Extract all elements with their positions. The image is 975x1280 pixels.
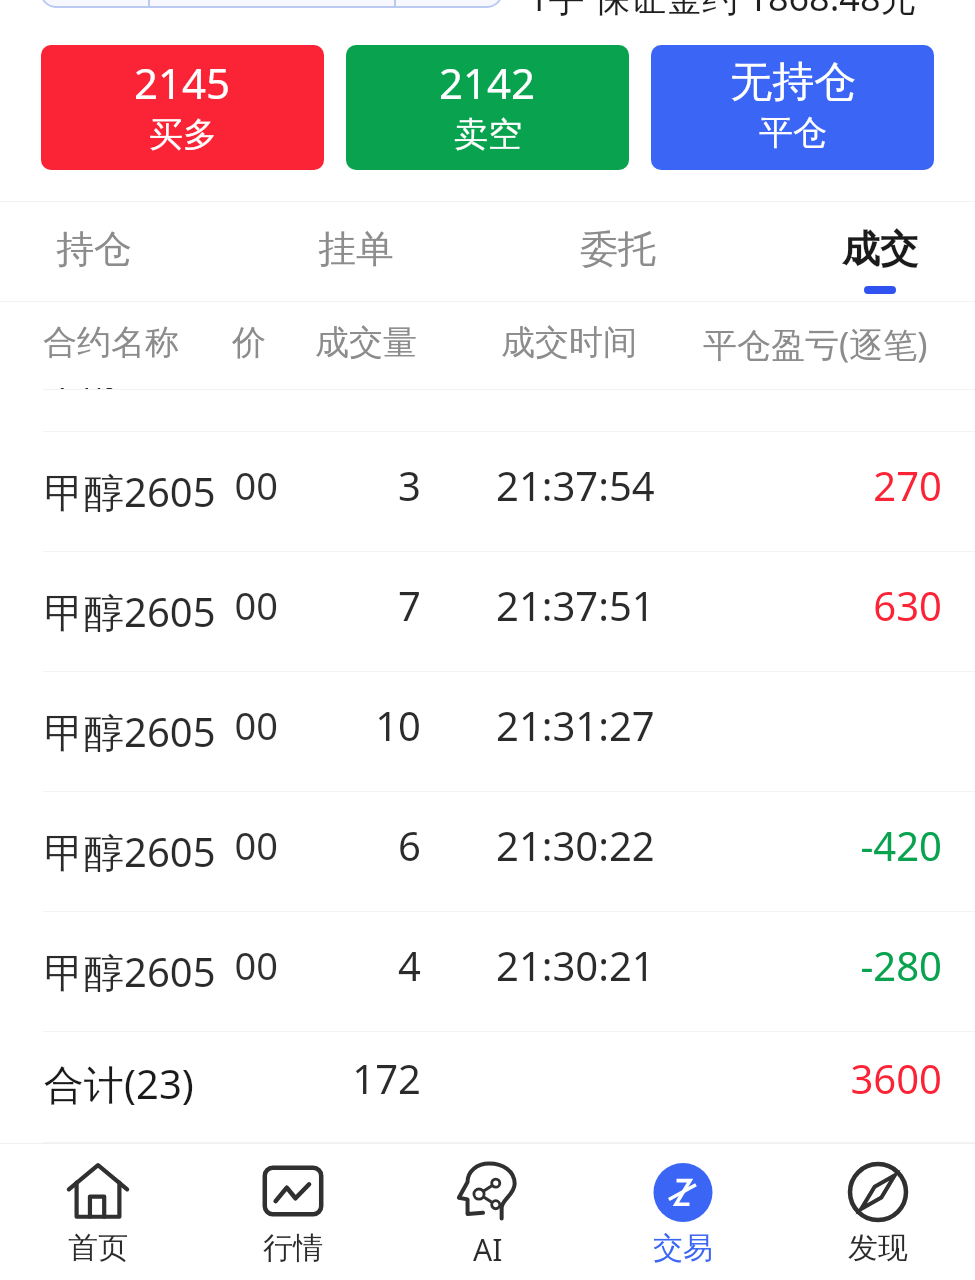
staticText: 行情 — [263, 1229, 323, 1267]
staticText: 00 — [188, 939, 278, 991]
staticText: 成交量 — [315, 321, 417, 364]
button[interactable]: 行情 — [195, 1144, 390, 1280]
staticText: 均价 — [232, 321, 278, 364]
button[interactable]: 00 — [0, 432, 975, 551]
staticText: 甲醇2605 — [44, 704, 216, 759]
staticText: 无持仓 — [730, 56, 856, 109]
staticText: 3 — [321, 458, 421, 512]
staticText: 首页 — [68, 1229, 128, 1267]
staticText: 21:30:21 — [496, 938, 655, 992]
staticText: 买多 — [149, 113, 217, 156]
button[interactable]: 00 — [0, 672, 975, 791]
staticText: 270 — [742, 458, 942, 512]
staticText: 甲醇2605 — [44, 584, 216, 639]
staticText: 172 — [321, 1051, 421, 1105]
button[interactable]: 00 — [0, 552, 975, 671]
button[interactable]: 2145 — [41, 45, 324, 170]
staticText: 21:37:54 — [496, 458, 655, 512]
staticText: 甲醇2605 — [44, 824, 216, 879]
staticText: 3600 — [742, 1051, 942, 1105]
staticText: 委托 — [580, 225, 656, 273]
button[interactable]: 持仓 — [19, 202, 169, 301]
staticText: 交易 — [653, 1229, 713, 1267]
staticText: 21:37:51 — [496, 578, 655, 632]
staticText: 6 — [321, 818, 421, 872]
staticText: 甲醇2605 — [44, 944, 216, 999]
staticText: 21:30:22 — [496, 818, 655, 872]
staticText: 10 — [321, 698, 421, 752]
staticText: 平仓 — [759, 111, 827, 154]
button[interactable]: 00 — [0, 912, 975, 1031]
button[interactable]: 00 — [0, 792, 975, 911]
staticText: 甲醇2605 — [44, 464, 216, 519]
staticText: 甲醇2605 — [44, 342, 216, 397]
staticText: -280 — [742, 938, 942, 992]
staticText: 发现 — [848, 1229, 908, 1267]
staticText: 卖空 — [454, 113, 522, 156]
staticText: 630 — [742, 578, 942, 632]
staticText: 00 — [188, 819, 278, 871]
button[interactable]: 成交 — [805, 202, 955, 301]
button[interactable]: 2142 — [346, 45, 629, 170]
button[interactable]: 委托 — [543, 202, 693, 301]
staticText: 4 — [321, 938, 421, 992]
staticText: 00 — [188, 579, 278, 631]
staticText: 合约名称 — [43, 321, 179, 364]
staticText: 挂单 — [318, 225, 394, 273]
staticText: 平仓盈亏(逐笔) — [703, 321, 928, 367]
staticText: 7 — [321, 578, 421, 632]
staticText: 00 — [188, 459, 278, 511]
staticText: 成交时间 — [501, 321, 637, 364]
staticText: 2145 — [134, 54, 231, 111]
button[interactable]: 首页 — [0, 1144, 195, 1280]
staticText: AI — [473, 1229, 503, 1270]
button[interactable]: 发现 — [780, 1144, 975, 1280]
staticText: 持仓 — [56, 225, 132, 273]
button[interactable]: 挂单 — [281, 202, 431, 301]
button[interactable]: AI — [390, 1144, 585, 1280]
button[interactable]: 交易 — [585, 1144, 780, 1280]
staticText: 00 — [188, 699, 278, 751]
staticText: 1手 保证金约 1868.48元 — [528, 0, 917, 18]
button[interactable]: 无持仓 — [651, 45, 934, 170]
staticText: 合计(23) — [44, 1056, 194, 1111]
staticText: 21:31:27 — [496, 698, 655, 752]
staticText: 成交 — [842, 225, 918, 273]
staticText: 2142 — [439, 54, 536, 111]
staticText: -420 — [742, 818, 942, 872]
